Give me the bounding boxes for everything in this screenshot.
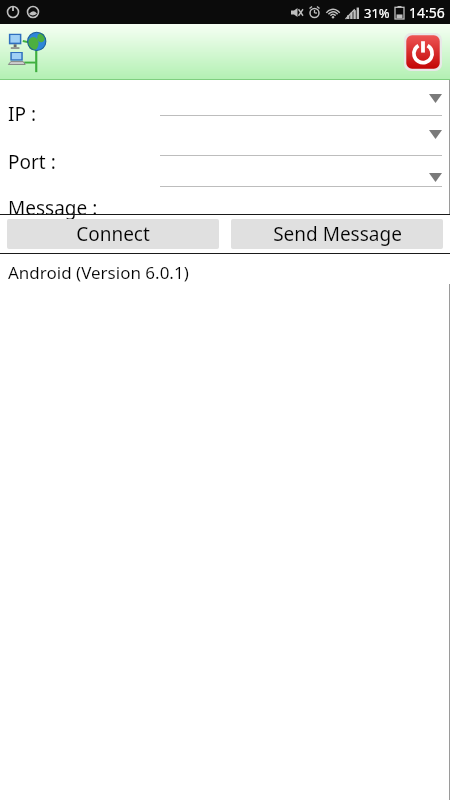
staticText: Connect xyxy=(76,221,150,247)
button[interactable]: Power off xyxy=(404,33,442,71)
staticText: 14:56 xyxy=(409,3,445,22)
button[interactable]: Network xyxy=(6,28,54,76)
button[interactable]: Connect xyxy=(7,219,219,249)
staticText: Send Message xyxy=(273,221,402,247)
staticText: Port : xyxy=(8,149,56,175)
staticText: 31% xyxy=(364,4,390,22)
button[interactable]: Dropdown xyxy=(429,173,442,182)
staticText: IP : xyxy=(8,101,36,127)
button[interactable]: Send Message xyxy=(231,219,443,249)
button[interactable]: Dropdown xyxy=(429,94,442,103)
button[interactable]: Dropdown xyxy=(429,130,442,139)
staticText: Message : xyxy=(8,195,98,221)
staticText: Android (Version 6.0.1) xyxy=(8,261,189,284)
